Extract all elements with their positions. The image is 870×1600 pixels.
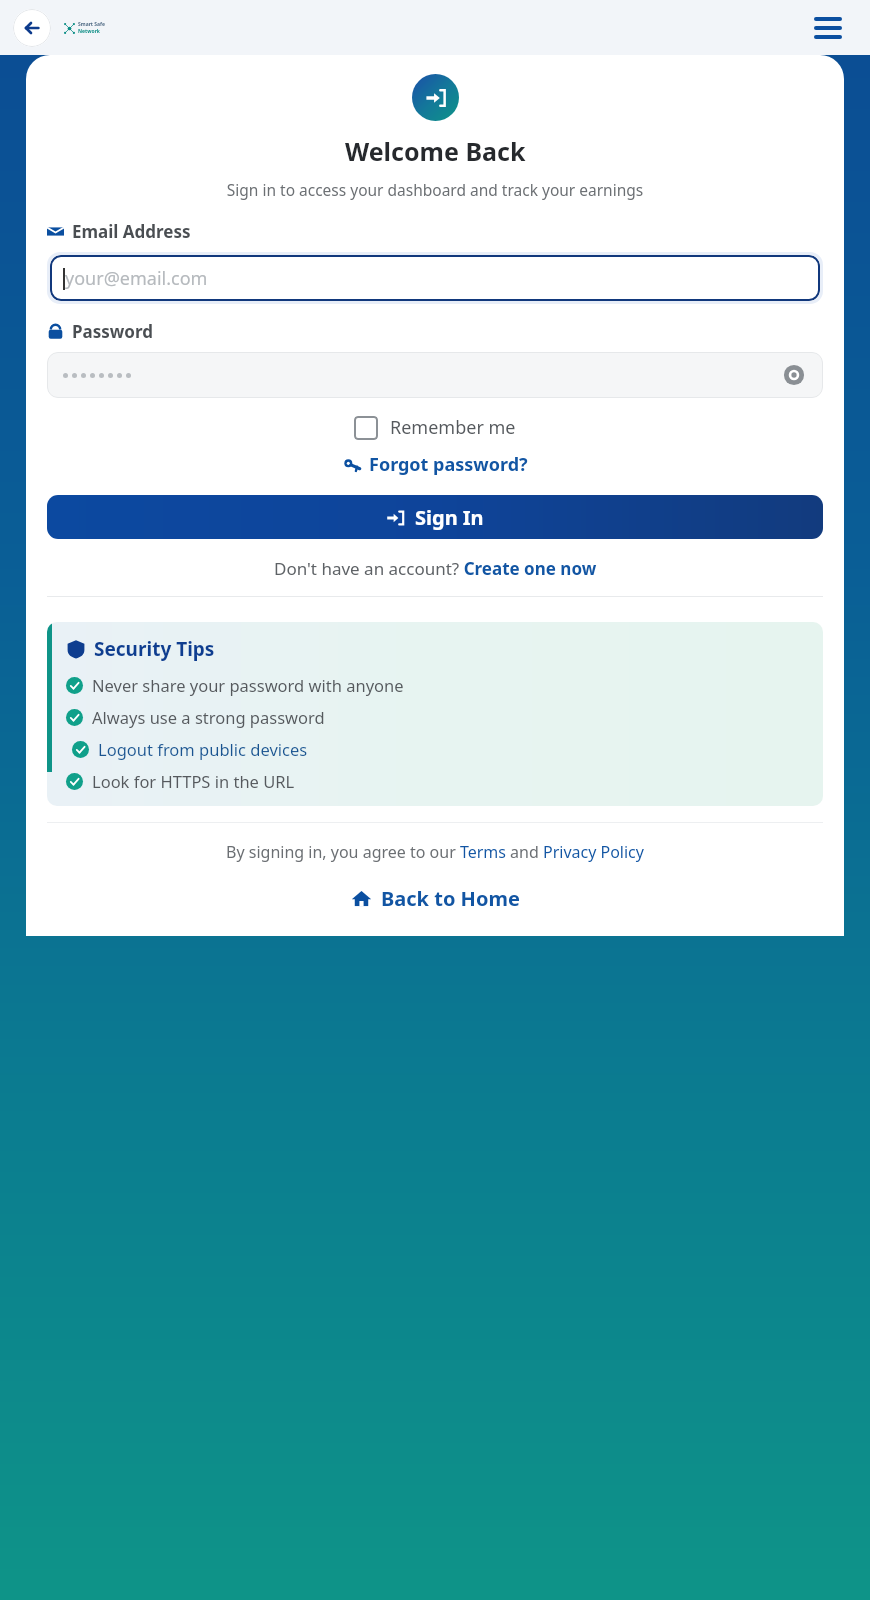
staticText: Forgot password?: [369, 452, 528, 477]
staticText: By signing in, you agree to our Terms an…: [47, 841, 823, 863]
button[interactable]: Forgot password?: [343, 452, 528, 477]
button[interactable]: Back to Home: [351, 885, 520, 912]
button[interactable]: your@email.com: [50, 255, 820, 301]
staticText: Back to Home: [381, 885, 520, 912]
button[interactable]: Show password: [781, 362, 807, 388]
staticText: Logout from public devices: [98, 738, 308, 760]
button[interactable]: Remember me: [354, 415, 516, 440]
staticText: Email Address: [72, 220, 191, 243]
staticText: Network: [78, 28, 100, 35]
button[interactable]: Menu: [814, 17, 842, 39]
staticText: Look for HTTPS in the URL: [92, 770, 295, 792]
button[interactable]: Back: [13, 9, 51, 47]
button[interactable]: Sign In: [47, 495, 823, 539]
button[interactable]: Smart Safe: [64, 21, 106, 35]
staticText: Smart Safe: [78, 21, 106, 28]
staticText: Don't have an account? Create one now: [274, 557, 597, 580]
staticText: Welcome Back: [345, 134, 526, 168]
button[interactable]: Show password: [47, 352, 823, 398]
button[interactable]: Security Tips: [47, 622, 823, 806]
staticText: Password: [72, 320, 153, 343]
staticText: Always use a strong password: [92, 706, 325, 728]
staticText: Remember me: [390, 415, 516, 440]
staticText: Security Tips: [94, 636, 215, 662]
staticText: Never share your password with anyone: [92, 674, 404, 696]
staticText: Sign In: [415, 504, 484, 531]
button[interactable]: Don't have an account? Create one now: [274, 557, 597, 580]
staticText: your@email.com: [65, 266, 208, 291]
staticText: Sign in to access your dashboard and tra…: [53, 179, 817, 200]
